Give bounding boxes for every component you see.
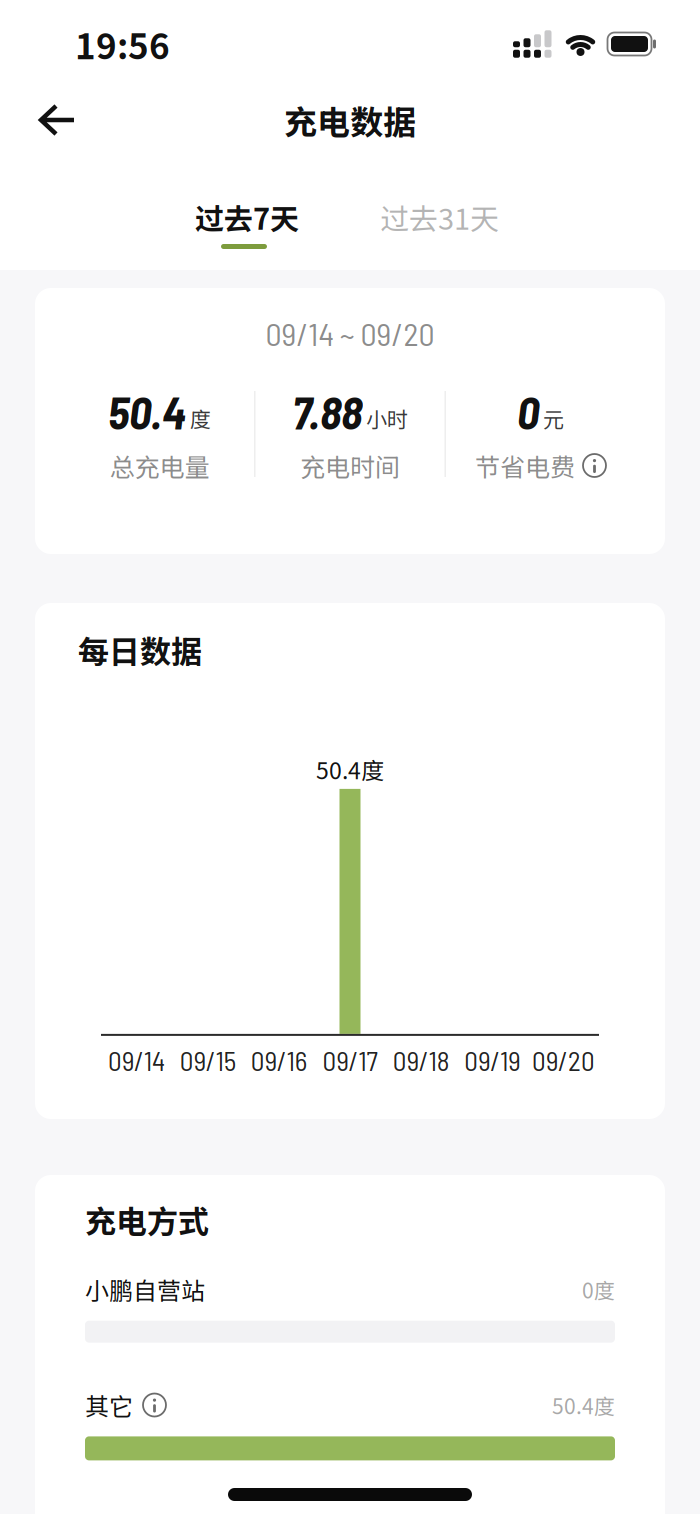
staticText: 每日数据 bbox=[78, 627, 202, 672]
staticText: 充电方式 bbox=[85, 1197, 209, 1242]
staticText: 50.4 bbox=[108, 384, 186, 438]
staticText: 过去7天 bbox=[195, 196, 299, 238]
staticText: 过去31天 bbox=[380, 196, 499, 238]
staticText: 09/16 bbox=[251, 1044, 307, 1076]
staticText: 总充电量 bbox=[109, 447, 209, 484]
staticText: 0度 bbox=[582, 1274, 615, 1304]
button[interactable]: 过去31天 bbox=[380, 196, 499, 249]
button[interactable]: Back bbox=[0, 95, 74, 145]
staticText: 19:56 bbox=[75, 19, 170, 69]
staticText: 09/14 ~ 09/20 bbox=[265, 314, 434, 352]
staticText: 09/20 bbox=[532, 1044, 595, 1076]
staticText: 50.4度 bbox=[552, 1390, 615, 1420]
staticText: 小鹏自营站 bbox=[85, 1272, 205, 1307]
staticText: 充电时间 bbox=[300, 447, 400, 484]
staticText: 7.88 bbox=[292, 384, 362, 438]
staticText: 09/18 bbox=[393, 1044, 450, 1076]
button[interactable]: About other charging bbox=[143, 1393, 166, 1416]
staticText: 元 bbox=[543, 403, 564, 433]
staticText: 09/19 bbox=[464, 1044, 520, 1076]
staticText: 09/15 bbox=[180, 1044, 236, 1076]
staticText: 09/17 bbox=[322, 1044, 377, 1076]
staticText: 09/14 bbox=[108, 1044, 165, 1076]
staticText: 充电数据 bbox=[284, 96, 416, 144]
staticText: 0 bbox=[517, 384, 539, 438]
staticText: 节省电费 bbox=[475, 447, 575, 484]
staticText: 其它 bbox=[85, 1388, 133, 1422]
button[interactable]: About saved cost bbox=[583, 454, 606, 477]
staticText: 度 bbox=[190, 403, 211, 433]
staticText: 小时 bbox=[366, 403, 408, 433]
button[interactable]: 过去7天 bbox=[201, 196, 305, 249]
staticText: 50.4度 bbox=[316, 753, 384, 786]
